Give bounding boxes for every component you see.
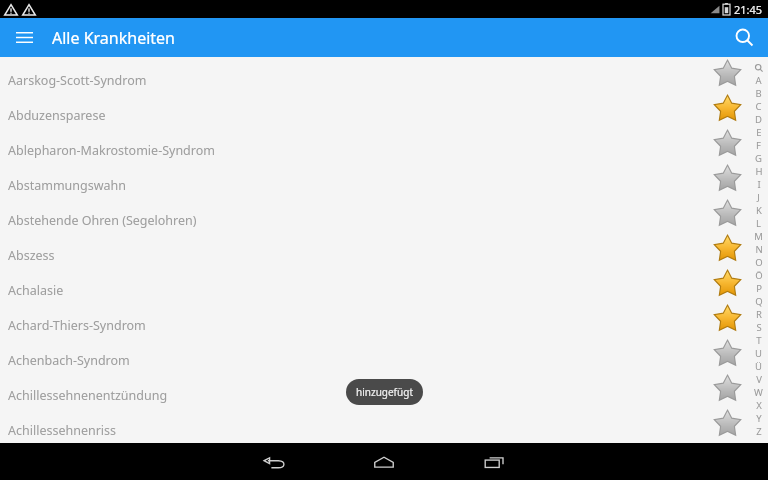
button[interactable]: Add favourite bbox=[712, 338, 742, 368]
button[interactable]: P bbox=[749, 282, 768, 295]
button[interactable]: K bbox=[749, 204, 768, 217]
staticText: X bbox=[756, 399, 762, 412]
staticText: hinzugefügt bbox=[356, 385, 413, 399]
button[interactable]: Q bbox=[749, 295, 768, 308]
button[interactable]: Add favourite bbox=[712, 58, 742, 88]
staticText: Q bbox=[755, 295, 763, 308]
button[interactable]: Remove favourite bbox=[712, 303, 742, 333]
staticText: O bbox=[755, 256, 763, 269]
staticText: W bbox=[754, 386, 763, 399]
button[interactable]: Abszess bbox=[0, 238, 768, 273]
button[interactable]: Recent apps bbox=[439, 443, 549, 480]
button[interactable]: Z bbox=[749, 425, 768, 438]
button[interactable]: Open navigation menu bbox=[0, 18, 48, 57]
staticText: Achillessehnenentzündung bbox=[8, 387, 168, 404]
button[interactable]: B bbox=[749, 87, 768, 100]
staticText: C bbox=[755, 100, 762, 113]
button[interactable]: Back bbox=[219, 443, 329, 480]
button[interactable]: O bbox=[749, 256, 768, 269]
button[interactable]: V bbox=[749, 373, 768, 386]
button[interactable]: C bbox=[749, 100, 768, 113]
button[interactable]: L bbox=[749, 217, 768, 230]
staticText: E bbox=[756, 126, 762, 139]
button[interactable]: G bbox=[749, 152, 768, 165]
button[interactable]: Search index bbox=[749, 61, 768, 74]
button[interactable]: Abstehende Ohren (Segelohren) bbox=[0, 203, 768, 238]
staticText: N bbox=[755, 243, 763, 256]
staticText: D bbox=[755, 113, 762, 126]
staticText: Achenbach-Syndrom bbox=[8, 352, 130, 369]
button[interactable]: Abduzensparese bbox=[0, 98, 768, 133]
staticText: Abstammungswahn bbox=[8, 177, 126, 194]
button[interactable]: T bbox=[749, 334, 768, 347]
staticText: Abduzensparese bbox=[8, 107, 106, 124]
staticText: F bbox=[756, 139, 761, 152]
staticText: K bbox=[756, 204, 762, 217]
staticText: T bbox=[756, 334, 762, 347]
staticText: Abszess bbox=[8, 247, 55, 264]
staticText: B bbox=[755, 87, 762, 100]
button[interactable]: Add favourite bbox=[712, 163, 742, 193]
button[interactable]: Search bbox=[720, 18, 768, 57]
button[interactable]: Add favourite bbox=[712, 373, 742, 403]
button[interactable]: Add favourite bbox=[712, 198, 742, 228]
button[interactable]: Remove favourite bbox=[712, 233, 742, 263]
button[interactable]: Achillessehnenentzündung bbox=[0, 378, 768, 413]
button[interactable]: Ü bbox=[749, 360, 768, 373]
button[interactable]: Abstammungswahn bbox=[0, 168, 768, 203]
staticText: V bbox=[756, 373, 762, 386]
staticText: P bbox=[756, 282, 762, 295]
staticText: Aarskog-Scott-Syndrom bbox=[8, 72, 147, 89]
staticText: A bbox=[755, 74, 762, 87]
button[interactable]: F bbox=[749, 139, 768, 152]
staticText: Z bbox=[756, 425, 762, 438]
button[interactable]: Remove favourite bbox=[712, 268, 742, 298]
button[interactable]: Y bbox=[749, 412, 768, 425]
button[interactable]: Achenbach-Syndrom bbox=[0, 343, 768, 378]
staticText: S bbox=[756, 321, 762, 334]
staticText: M bbox=[754, 230, 763, 243]
button[interactable]: I bbox=[749, 178, 768, 191]
staticText: Ü bbox=[755, 360, 762, 373]
staticText: L bbox=[756, 217, 761, 230]
staticText: Y bbox=[756, 412, 762, 425]
staticText: Achillessehnenriss bbox=[8, 422, 117, 439]
button[interactable]: Remove favourite bbox=[712, 93, 742, 123]
staticText: H bbox=[755, 165, 763, 178]
button[interactable]: N bbox=[749, 243, 768, 256]
staticText: Achalasie bbox=[8, 282, 64, 299]
button[interactable]: D bbox=[749, 113, 768, 126]
button[interactable]: E bbox=[749, 126, 768, 139]
staticText: Alle Krankheiten bbox=[52, 27, 175, 49]
button[interactable]: J bbox=[749, 191, 768, 204]
button[interactable]: Achalasie bbox=[0, 273, 768, 308]
button[interactable]: M bbox=[749, 230, 768, 243]
button[interactable]: R bbox=[749, 308, 768, 321]
button[interactable]: H bbox=[749, 165, 768, 178]
button[interactable]: Ablepharon-Makrostomie-Syndrom bbox=[0, 133, 768, 168]
staticText: U bbox=[755, 347, 762, 360]
button[interactable]: X bbox=[749, 399, 768, 412]
staticText: Ablepharon-Makrostomie-Syndrom bbox=[8, 142, 215, 159]
button[interactable]: W bbox=[749, 386, 768, 399]
button[interactable]: Achard-Thiers-Syndrom bbox=[0, 308, 768, 343]
staticText: J bbox=[757, 191, 760, 204]
button[interactable]: Aarskog-Scott-Syndrom bbox=[0, 63, 768, 98]
button[interactable]: Add favourite bbox=[712, 408, 742, 438]
button[interactable]: Add favourite bbox=[712, 128, 742, 158]
staticText: 21:45 bbox=[734, 2, 763, 17]
staticText: Abstehende Ohren (Segelohren) bbox=[8, 212, 197, 229]
button[interactable]: Ö bbox=[749, 269, 768, 282]
button[interactable]: Home bbox=[329, 443, 439, 480]
button[interactable]: U bbox=[749, 347, 768, 360]
staticText: Ö bbox=[755, 269, 763, 282]
button[interactable]: Achillessehnenriss bbox=[0, 413, 768, 448]
staticText: R bbox=[756, 308, 762, 321]
button[interactable]: A bbox=[749, 74, 768, 87]
staticText: G bbox=[755, 152, 762, 165]
staticText: I bbox=[757, 178, 761, 191]
button[interactable]: S bbox=[749, 321, 768, 334]
staticText: Achard-Thiers-Syndrom bbox=[8, 317, 146, 334]
